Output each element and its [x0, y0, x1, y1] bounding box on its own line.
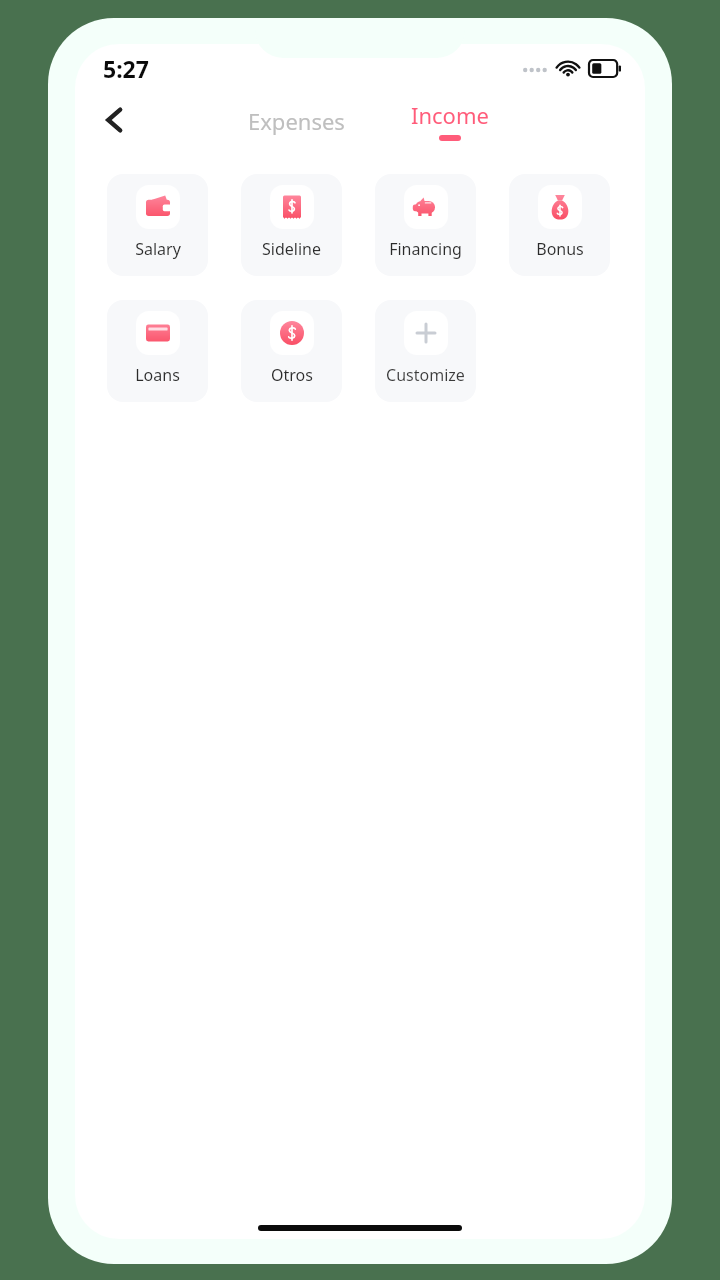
button[interactable]: Salary	[107, 174, 208, 276]
staticText: Bonus	[536, 238, 584, 260]
button[interactable]: Loans	[107, 300, 208, 402]
staticText: Loans	[135, 364, 180, 386]
button[interactable]: Back	[89, 94, 141, 146]
staticText: Financing	[389, 238, 462, 260]
staticText: Expenses	[248, 106, 345, 136]
staticText: Income	[411, 100, 489, 130]
staticText: Customize	[386, 364, 465, 386]
button[interactable]: Income	[401, 98, 499, 143]
button[interactable]: Otros	[241, 300, 342, 402]
button[interactable]: Financing	[375, 174, 476, 276]
button[interactable]: Sideline	[241, 174, 342, 276]
button[interactable]: Bonus	[509, 174, 610, 276]
staticText: Salary	[135, 238, 181, 260]
button[interactable]: Customize	[375, 300, 476, 402]
staticText: 5:27	[103, 53, 149, 84]
button[interactable]: Expenses	[238, 100, 355, 142]
staticText: Sideline	[262, 238, 321, 260]
staticText: Otros	[271, 364, 313, 386]
